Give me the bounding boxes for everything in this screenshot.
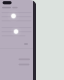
button[interactable] [0,6,33,9]
